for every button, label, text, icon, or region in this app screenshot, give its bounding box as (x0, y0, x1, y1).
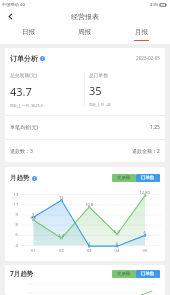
staticText: 月报 (135, 28, 148, 36)
staticText: 43% (150, 2, 159, 8)
button[interactable]: 月报 (113, 24, 170, 44)
button[interactable]: 订单数 (136, 270, 160, 278)
staticText: 1.25 (150, 124, 160, 131)
staticText: 订单数 (141, 175, 155, 181)
staticText: 日报 (22, 28, 35, 36)
staticText: 退款数：3 (10, 148, 33, 155)
button[interactable]: Back (0, 9, 20, 24)
staticText: 经营报表 (71, 12, 99, 21)
staticText: 总交易额(元) (10, 72, 37, 79)
staticText: 2023-02-05 (136, 55, 160, 61)
staticText: 同比上月 -44 (89, 102, 111, 107)
staticText: 7月趋势 (10, 269, 34, 278)
button[interactable]: 周报 (56, 24, 113, 44)
staticText: 月趋势 (10, 174, 30, 182)
button[interactable]: 日报 (0, 24, 56, 44)
staticText: 43.7 (10, 84, 32, 99)
staticText: 交易额 (117, 271, 131, 277)
staticText: 35 (89, 83, 102, 98)
staticText: 订单数 (141, 271, 155, 277)
staticText: 订单分析 (10, 54, 38, 63)
button[interactable]: 交易额 (112, 270, 136, 278)
staticText: 周报 (78, 28, 91, 36)
staticText: 交易额 (117, 175, 131, 181)
staticText: 中国移动 4G (2, 2, 26, 8)
staticText: 总订单数 (89, 72, 109, 78)
button[interactable]: 交易额 (112, 174, 136, 182)
staticText: 同比上一月 -9625.6 (10, 103, 44, 108)
staticText: 单笔均价(元) (10, 124, 39, 131)
staticText: 退款金额：2 (132, 148, 160, 155)
button[interactable]: 订单数 (136, 174, 160, 182)
